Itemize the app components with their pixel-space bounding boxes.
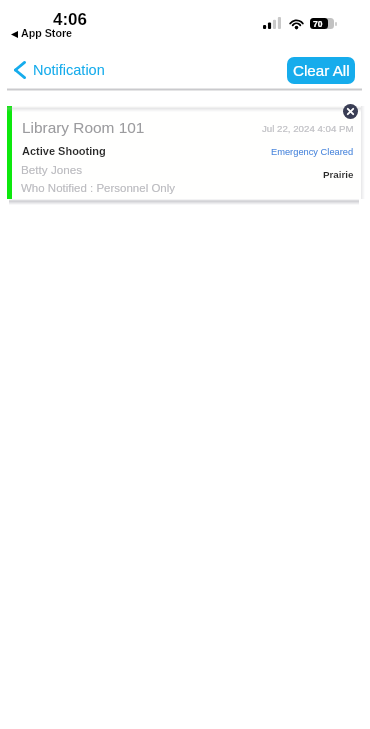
staticText: Who Notified : Personnel Only xyxy=(21,182,176,195)
staticText: Emergency Cleared xyxy=(271,147,354,157)
button[interactable]: Notification xyxy=(0,45,115,88)
button[interactable]: Library Room 101 xyxy=(7,106,361,199)
staticText: Betty Jones xyxy=(21,163,83,176)
staticText: Active Shooting xyxy=(22,145,106,157)
button[interactable]: Dismiss notification xyxy=(343,104,358,119)
staticText: Notification xyxy=(33,62,105,78)
button[interactable]: Clear All xyxy=(287,57,355,84)
staticText: Jul 22, 2024 4:04 PM xyxy=(262,123,354,134)
staticText: Prairie xyxy=(323,169,354,180)
button[interactable]: App Store xyxy=(0,24,100,42)
staticText: Library Room 101 xyxy=(22,119,145,136)
staticText: 4:06 xyxy=(53,10,88,29)
staticText: App Store xyxy=(21,27,73,39)
staticText: 70 xyxy=(313,19,323,28)
staticText: Clear All xyxy=(293,62,350,79)
